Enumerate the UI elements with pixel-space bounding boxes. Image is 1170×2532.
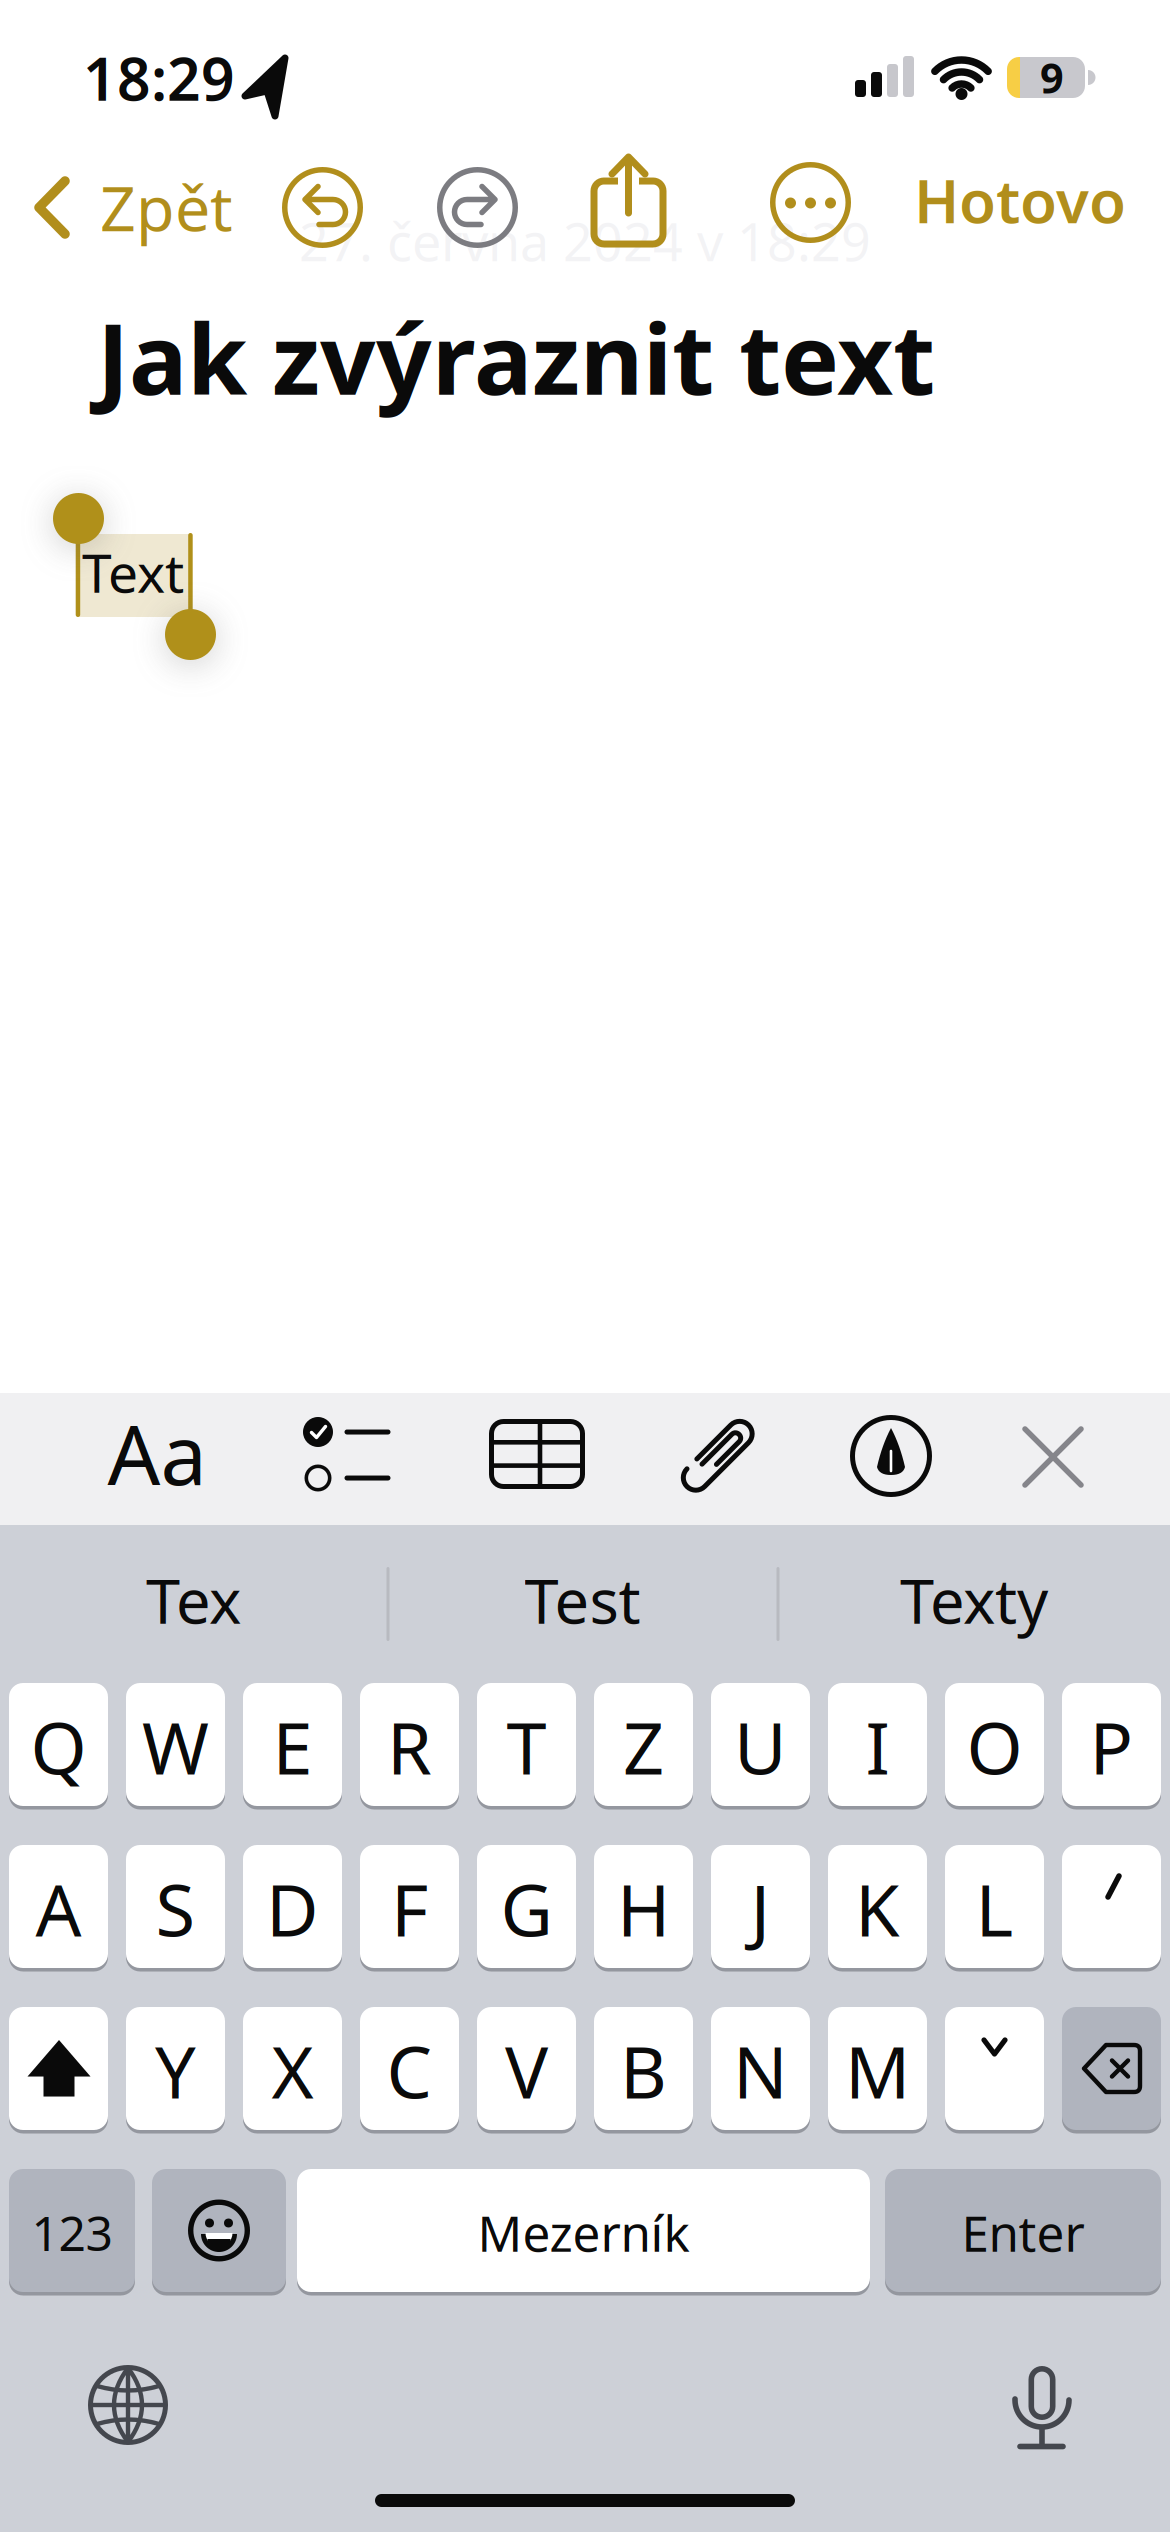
button[interactable]: Dictation <box>1000 2364 1084 2450</box>
button[interactable]: 123 <box>9 2169 135 2292</box>
button[interactable]: Share <box>585 149 673 253</box>
button[interactable]: Markup <box>850 1415 932 1497</box>
button[interactable]: V <box>477 2007 576 2130</box>
staticText: D <box>266 1861 319 1956</box>
button[interactable]: Close <box>1015 1419 1091 1495</box>
staticText: U <box>734 1699 787 1794</box>
button[interactable]: Table <box>489 1419 585 1489</box>
button[interactable]: T <box>477 1683 576 1806</box>
button[interactable]: Delete <box>1062 2007 1161 2130</box>
button[interactable]: I <box>828 1683 927 1806</box>
button[interactable]: Texty <box>778 1521 1170 1679</box>
button[interactable]: Y <box>126 2007 225 2130</box>
button[interactable]: Enter <box>885 2169 1161 2292</box>
staticText: Tex <box>146 1559 241 1641</box>
staticText: G <box>500 1861 552 1956</box>
staticText: M <box>845 2023 910 2118</box>
staticText: Text <box>82 537 184 607</box>
button[interactable]: U <box>711 1683 810 1806</box>
button[interactable]: D <box>243 1845 342 1968</box>
staticText: Hotovo <box>914 160 1126 240</box>
staticText: Aa <box>107 1398 206 1508</box>
staticText: A <box>35 1861 81 1956</box>
button[interactable]: Checklist <box>285 1410 397 1500</box>
button[interactable]: Hotovo <box>886 160 1126 240</box>
button[interactable]: J <box>711 1845 810 1968</box>
staticText: I <box>865 1699 889 1794</box>
staticText: Q <box>30 1699 86 1794</box>
button[interactable]: Q <box>9 1683 108 1806</box>
button[interactable]: C <box>360 2007 459 2130</box>
button[interactable]: W <box>126 1683 225 1806</box>
button[interactable]: Next keyboard <box>88 2365 168 2445</box>
button[interactable]: Acute accent <box>1062 1845 1161 1968</box>
button[interactable]: N <box>711 2007 810 2130</box>
button[interactable]: H <box>594 1845 693 1968</box>
staticText: C <box>386 2023 432 2118</box>
staticText: H <box>617 1861 670 1956</box>
staticText: W <box>142 1699 209 1794</box>
staticText: O <box>966 1699 1022 1794</box>
staticText: R <box>387 1699 432 1794</box>
button[interactable]: Z <box>594 1683 693 1806</box>
button[interactable]: G <box>477 1845 576 1968</box>
button[interactable]: Test <box>388 1521 777 1679</box>
staticText: B <box>620 2023 667 2118</box>
button[interactable]: Caron accent <box>945 2007 1044 2130</box>
button[interactable]: Attach <box>676 1412 762 1498</box>
button[interactable]: F <box>360 1845 459 1968</box>
button[interactable]: P <box>1062 1683 1161 1806</box>
button[interactable]: O <box>945 1683 1044 1806</box>
staticText: X <box>271 2023 313 2118</box>
button[interactable]: Zpět <box>20 165 235 249</box>
staticText: 123 <box>31 2201 112 2264</box>
button[interactable]: Undo <box>282 167 363 248</box>
staticText: Z <box>623 1699 664 1794</box>
staticText: Texty <box>900 1559 1048 1641</box>
staticText: V <box>505 2023 548 2118</box>
button[interactable]: L <box>945 1845 1044 1968</box>
button[interactable]: R <box>360 1683 459 1806</box>
button[interactable]: B <box>594 2007 693 2130</box>
button[interactable]: Formatting <box>92 1398 222 1508</box>
staticText: N <box>733 2023 788 2118</box>
staticText: 18:29 <box>83 39 235 117</box>
staticText: P <box>1089 1699 1133 1794</box>
button[interactable]: Tex <box>0 1521 387 1679</box>
staticText: Enter <box>961 2200 1084 2265</box>
button[interactable]: K <box>828 1845 927 1968</box>
button[interactable]: M <box>828 2007 927 2130</box>
button[interactable]: A <box>9 1845 108 1968</box>
button[interactable]: Emoji <box>152 2169 286 2292</box>
staticText: 27. června 2024 v 18:29 <box>299 206 871 276</box>
button[interactable]: Mezerník <box>297 2169 870 2292</box>
staticText: 9 <box>1040 50 1064 105</box>
button[interactable]: X <box>243 2007 342 2130</box>
staticText: Mezerník <box>477 2200 689 2265</box>
staticText: Jak zvýraznit text <box>97 292 935 422</box>
staticText: Test <box>524 1559 640 1641</box>
button[interactable]: More <box>770 162 851 243</box>
button[interactable]: Redo <box>437 167 518 248</box>
staticText: J <box>750 1861 770 1956</box>
button[interactable]: E <box>243 1683 342 1806</box>
staticText: T <box>506 1699 546 1794</box>
staticText: F <box>391 1861 428 1956</box>
staticText: L <box>975 1861 1013 1956</box>
staticText: Zpět <box>100 165 233 249</box>
button[interactable]: S <box>126 1845 225 1968</box>
button[interactable]: Shift <box>9 2007 108 2130</box>
staticText: E <box>272 1699 312 1794</box>
staticText: K <box>855 1861 900 1956</box>
staticText: S <box>155 1861 195 1956</box>
staticText: Y <box>155 2023 196 2118</box>
